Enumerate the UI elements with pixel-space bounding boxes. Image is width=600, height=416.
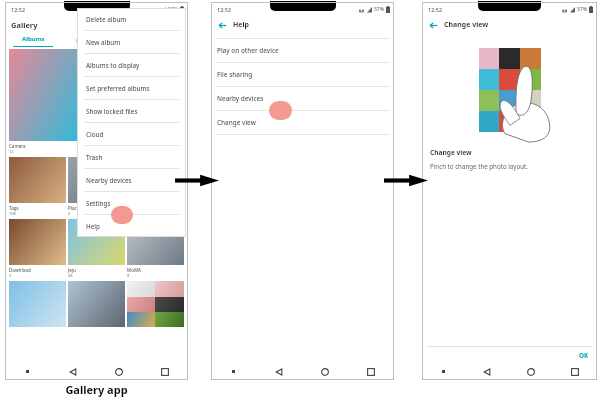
staticText: 57% xyxy=(577,6,587,13)
staticText: 2 xyxy=(68,211,71,216)
staticText: Download xyxy=(9,267,31,273)
button[interactable] xyxy=(9,219,66,265)
staticText: Show locked files xyxy=(86,107,138,116)
button[interactable]: Menu xyxy=(422,363,465,380)
button[interactable]: Back xyxy=(217,20,228,31)
staticText: Play on other device xyxy=(217,46,279,55)
staticText: 8 xyxy=(127,273,130,278)
staticText: 12:52 xyxy=(217,6,232,13)
button[interactable]: Menu xyxy=(211,363,256,380)
staticText: Place xyxy=(68,205,80,211)
button[interactable]: Home xyxy=(302,363,348,380)
staticText: Trash xyxy=(86,153,103,162)
button[interactable] xyxy=(127,157,184,203)
staticText: Change view xyxy=(444,20,489,30)
staticText: Change view xyxy=(217,118,256,127)
button[interactable]: Nearby devices xyxy=(77,169,186,191)
button[interactable] xyxy=(68,219,125,265)
button[interactable]: Delete album xyxy=(77,8,186,30)
button[interactable]: OK xyxy=(571,348,597,363)
staticText: 28 xyxy=(68,273,73,278)
button[interactable]: Nearby devices xyxy=(211,87,394,110)
button[interactable] xyxy=(68,157,125,203)
button[interactable]: Settings xyxy=(77,192,186,214)
staticText: Albums xyxy=(22,35,45,43)
staticText: Nearby devices xyxy=(86,176,132,185)
button[interactable]: Menu xyxy=(5,363,50,380)
staticText: Help xyxy=(233,20,250,30)
button[interactable]: Cloud xyxy=(77,123,186,145)
button[interactable]: New album xyxy=(77,31,186,53)
button[interactable] xyxy=(127,281,184,327)
staticText: File sharing xyxy=(217,70,253,79)
staticText: 108 xyxy=(9,211,16,216)
button[interactable]: Help xyxy=(77,215,186,237)
button[interactable]: Recents xyxy=(142,363,188,380)
staticText: 57% xyxy=(374,6,384,13)
button[interactable]: Albums xyxy=(5,33,61,48)
button[interactable]: Trash xyxy=(77,146,186,168)
button[interactable]: Photos xyxy=(61,33,111,48)
staticText: Camera xyxy=(9,143,26,149)
staticText: Alice xyxy=(127,205,138,211)
button[interactable] xyxy=(9,157,66,203)
button[interactable]: Recents xyxy=(553,363,597,380)
button[interactable] xyxy=(9,281,66,327)
staticText: OK xyxy=(579,351,589,360)
staticText: 12 xyxy=(9,149,14,154)
staticText: Tags xyxy=(9,205,19,211)
button[interactable]: Set preferred albums xyxy=(77,77,186,99)
staticText: Change view xyxy=(430,148,472,157)
button[interactable] xyxy=(127,219,184,265)
staticText: Delete album xyxy=(86,15,127,24)
staticText: Help xyxy=(86,222,100,231)
staticText: Albums to display xyxy=(86,61,140,70)
button[interactable]: Back xyxy=(465,363,509,380)
staticText: 57% xyxy=(168,6,178,13)
staticText: Jeju xyxy=(68,267,76,273)
staticText: 3 xyxy=(9,273,12,278)
staticText: Photos xyxy=(76,37,96,45)
staticText: Gallery app xyxy=(65,382,128,397)
button[interactable]: Back xyxy=(256,363,302,380)
button[interactable]: Home xyxy=(96,363,142,380)
staticText: Set preferred albums xyxy=(86,84,150,93)
button[interactable]: Change view xyxy=(211,111,394,134)
button[interactable] xyxy=(68,281,125,327)
staticText: 12:52 xyxy=(11,6,26,13)
button[interactable] xyxy=(9,49,184,141)
button[interactable]: Back xyxy=(50,363,96,380)
staticText: MoMA xyxy=(127,267,141,273)
staticText: 12:52 xyxy=(428,6,443,13)
button[interactable]: Show locked files xyxy=(77,100,186,122)
button[interactable]: File sharing xyxy=(211,63,394,86)
staticText: New album xyxy=(86,38,121,47)
staticText: Nearby devices xyxy=(217,94,264,103)
staticText: Pinch to change the photo layout. xyxy=(430,162,528,170)
button[interactable]: Back xyxy=(428,20,439,31)
button[interactable]: Albums to display xyxy=(77,54,186,76)
button[interactable]: Play on other device xyxy=(211,39,394,62)
staticText: Cloud xyxy=(86,130,104,139)
button[interactable]: Home xyxy=(509,363,553,380)
staticText: Settings xyxy=(86,199,111,208)
button[interactable]: Recents xyxy=(348,363,394,380)
staticText: Gallery xyxy=(11,20,38,30)
